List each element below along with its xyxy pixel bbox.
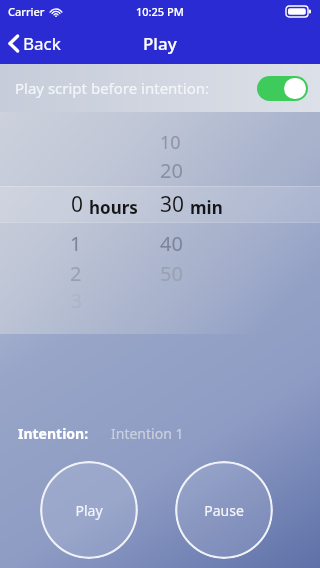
staticText: 10:25 PM: [136, 4, 184, 19]
staticText: hours: [89, 196, 138, 219]
staticText: 2: [70, 260, 82, 286]
button[interactable]: 0: [0, 186, 320, 223]
button[interactable]: Back: [0, 28, 71, 59]
staticText: Intention 1: [111, 424, 184, 443]
button[interactable]: Play script before intention:: [0, 64, 320, 112]
staticText: 10: [160, 130, 181, 155]
staticText: 1: [70, 230, 82, 256]
button[interactable]: Intention:: [18, 424, 320, 443]
staticText: 20: [160, 157, 183, 183]
staticText: Play: [75, 501, 103, 520]
staticText: Carrier: [8, 4, 45, 19]
button[interactable]: Play script before intention toggle: [257, 76, 308, 101]
staticText: 3: [71, 288, 82, 314]
staticText: Play: [143, 32, 177, 55]
button[interactable]: Play: [40, 461, 138, 559]
staticText: min: [190, 196, 223, 219]
staticText: Back: [23, 32, 61, 55]
staticText: 50: [160, 260, 183, 286]
staticText: 40: [160, 230, 183, 256]
staticText: Play script before intention:: [15, 78, 210, 98]
staticText: Intention:: [18, 424, 89, 443]
button[interactable]: Pause: [175, 461, 273, 559]
staticText: 30: [160, 190, 185, 219]
staticText: 0: [71, 190, 84, 219]
staticText: Pause: [204, 501, 244, 520]
